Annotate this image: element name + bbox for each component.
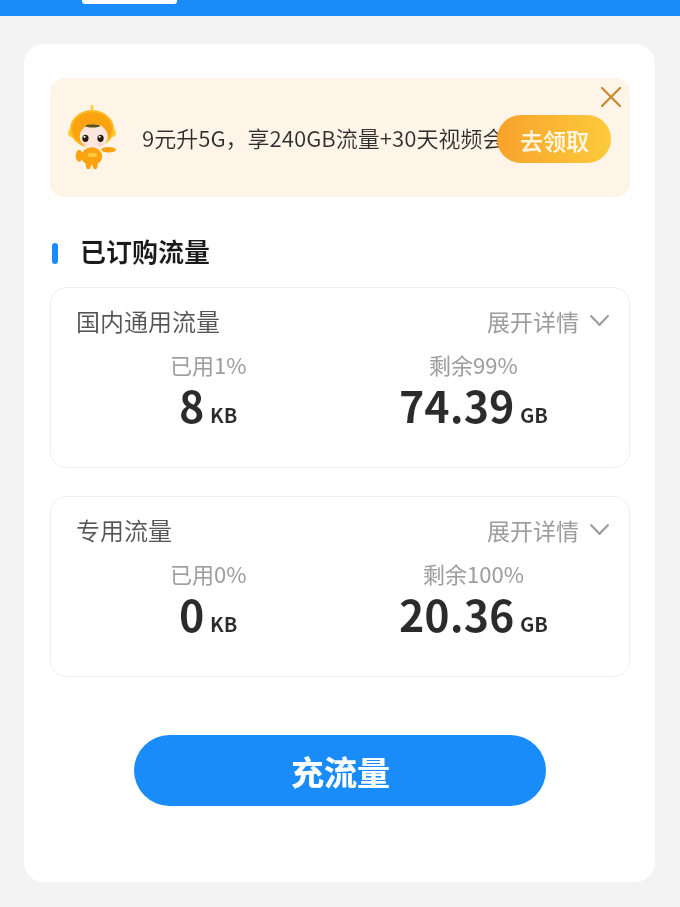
staticText: 专用流量 xyxy=(76,512,172,547)
button[interactable]: 专用流量 xyxy=(50,496,630,677)
staticText: KB xyxy=(210,400,238,429)
staticText: 已用0% xyxy=(170,557,247,589)
staticText: KB xyxy=(210,609,238,638)
staticText: 充流量 xyxy=(291,747,390,795)
staticText: GB xyxy=(520,400,548,429)
staticText: 9元升5G，享240GB流量+30天视频会员 xyxy=(142,121,527,153)
button[interactable]: 充流量 xyxy=(134,735,546,806)
staticText: 20.36 xyxy=(399,582,515,644)
staticText: 展开详情 xyxy=(487,304,579,337)
staticText: 国内通用流量 xyxy=(76,303,220,338)
staticText: 0 xyxy=(179,582,205,644)
staticText: GB xyxy=(520,609,548,638)
staticText: 已订购流量 xyxy=(80,232,211,270)
staticText: 展开详情 xyxy=(487,513,579,546)
staticText: 已用1% xyxy=(170,348,247,380)
button[interactable]: Close xyxy=(596,82,626,112)
staticText: 去领取 xyxy=(520,123,589,156)
staticText: 74.39 xyxy=(399,373,515,435)
button[interactable]: 去领取 xyxy=(497,115,611,163)
staticText: 8 xyxy=(179,373,205,435)
button[interactable]: 国内通用流量 xyxy=(50,287,630,468)
staticText: 剩余99% xyxy=(429,348,518,380)
staticText: 剩余100% xyxy=(423,557,524,589)
